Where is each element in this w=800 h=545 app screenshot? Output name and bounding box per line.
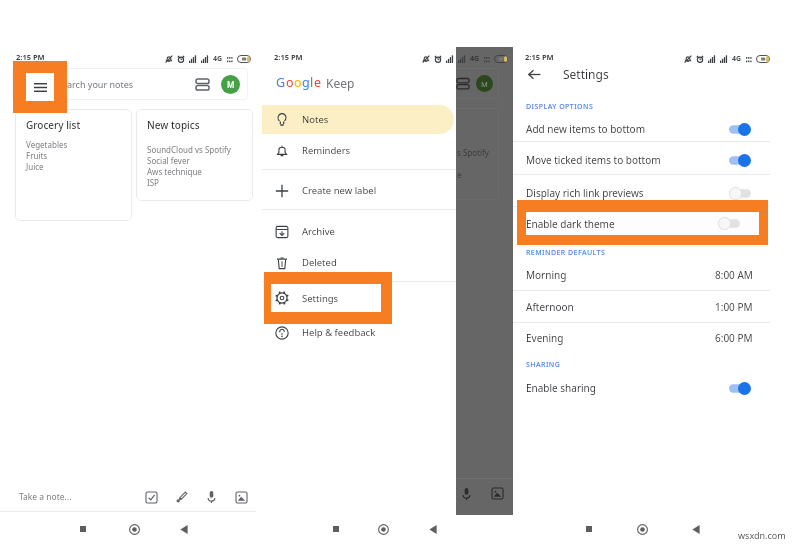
staticText: 2:15 PM — [525, 52, 554, 62]
button[interactable]: Back — [173, 518, 195, 540]
staticText: Enable dark theme — [526, 216, 615, 230]
staticText: Enable sharing — [526, 381, 596, 395]
staticText: Take a note... — [19, 491, 72, 503]
staticText: DISPLAY OPTIONS — [526, 102, 594, 112]
staticText: 8:00 AM — [715, 268, 753, 282]
button[interactable]: Reminders — [262, 136, 457, 165]
staticText: wsxdn.com — [738, 529, 786, 541]
staticText: 2:15 PM — [16, 52, 45, 62]
staticText: G — [276, 74, 286, 91]
button[interactable]: Enable sharing — [513, 377, 770, 399]
button[interactable]: New voice note — [199, 485, 223, 509]
button[interactable]: Home — [631, 518, 653, 540]
staticText: s Spotify — [457, 147, 489, 158]
staticText: g — [302, 74, 310, 91]
button[interactable]: Recent apps — [72, 518, 94, 540]
staticText: Grocery list — [26, 118, 81, 132]
button[interactable]: Enable dark theme — [526, 212, 759, 235]
staticText: arch your notes — [67, 78, 134, 90]
staticText: Notes — [302, 113, 329, 126]
button[interactable]: New list — [139, 485, 163, 509]
staticText: REMINDER DEFAULTS — [526, 248, 606, 258]
staticText: Evening — [526, 331, 564, 345]
staticText: Afternoon — [526, 300, 574, 314]
button[interactable]: Back — [525, 65, 543, 83]
button[interactable]: Archive — [262, 217, 457, 246]
staticText: SHARING — [526, 360, 561, 370]
button[interactable]: Move ticked items to bottom — [513, 149, 770, 171]
staticText: M — [481, 79, 488, 89]
staticText: Display rich link previews — [526, 186, 644, 200]
staticText: Add new items to bottom — [526, 122, 646, 136]
staticText: Help & feedback — [302, 326, 376, 339]
button[interactable]: arch your notes — [12, 68, 248, 100]
staticText: SoundCloud vs Spotify — [147, 144, 231, 155]
button[interactable]: Recent apps — [578, 518, 600, 540]
staticText: 4G — [213, 54, 223, 64]
staticText: Settings — [563, 66, 609, 82]
staticText: Move ticked items to bottom — [526, 153, 661, 167]
staticText: Social fever — [147, 155, 190, 166]
staticText: ISP — [147, 177, 159, 188]
button[interactable]: Afternoon — [513, 296, 770, 318]
staticText: Morning — [526, 268, 567, 282]
button[interactable]: Evening — [513, 327, 770, 349]
staticText: 2:15 PM — [274, 52, 303, 62]
button[interactable]: Grocery list — [15, 109, 132, 221]
staticText: Reminders — [302, 144, 351, 157]
button[interactable]: Enable dark theme — [513, 212, 770, 234]
button[interactable]: Create new label — [262, 176, 457, 205]
staticText: Settings — [302, 292, 339, 305]
button[interactable]: Recent apps — [325, 518, 347, 540]
button[interactable]: Settings — [271, 284, 381, 312]
button[interactable]: Help & feedback — [262, 318, 457, 347]
staticText: New topics — [147, 118, 200, 132]
button[interactable]: Account — [221, 75, 240, 94]
button[interactable]: Add new items to bottom — [513, 118, 770, 140]
staticText: Enable dark theme — [526, 217, 615, 231]
button[interactable]: Take a note... — [19, 491, 72, 503]
staticText: Settings — [302, 295, 339, 308]
staticText: Fruits — [26, 150, 48, 161]
button[interactable]: New drawing — [169, 485, 193, 509]
staticText: o — [286, 74, 294, 91]
staticText: M — [227, 79, 235, 90]
button[interactable]: New image note — [229, 485, 253, 509]
staticText: 6:00 PM — [715, 331, 753, 345]
staticText: o — [294, 74, 302, 91]
staticText: e — [314, 74, 322, 91]
staticText: e — [457, 169, 462, 180]
button[interactable]: Settings — [262, 287, 457, 316]
staticText: Create new label — [302, 184, 377, 197]
button[interactable]: Display rich link previews — [513, 182, 770, 204]
button[interactable]: Deleted — [262, 248, 457, 277]
staticText: Vegetables — [26, 139, 68, 150]
button[interactable]: Morning — [513, 264, 770, 286]
staticText: 4G — [732, 54, 742, 64]
staticText: 4G — [470, 54, 480, 64]
staticText: Aws technique — [147, 166, 202, 177]
button[interactable]: Back — [422, 518, 444, 540]
button[interactable]: Back — [685, 518, 707, 540]
button[interactable]: Home — [372, 518, 394, 540]
button[interactable]: Notes — [262, 105, 454, 134]
button[interactable]: Change view — [191, 73, 213, 95]
staticText: Archive — [302, 225, 335, 238]
button[interactable]: Home — [123, 518, 145, 540]
staticText: l — [310, 74, 314, 91]
button[interactable]: G — [276, 74, 355, 91]
button[interactable]: New topics — [136, 109, 253, 201]
staticText: 1:00 PM — [715, 300, 753, 314]
staticText: Deleted — [302, 256, 337, 269]
staticText: Juice — [26, 161, 44, 172]
staticText: Keep — [326, 75, 355, 91]
button[interactable]: Open navigation drawer — [26, 73, 54, 101]
